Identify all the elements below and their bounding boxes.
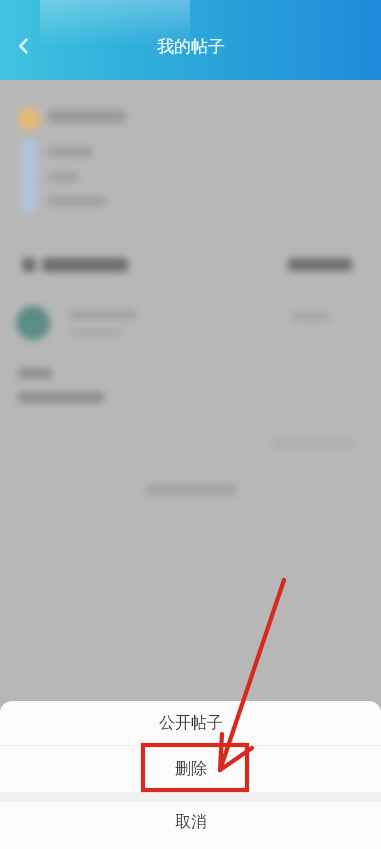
staticText: 取消 <box>175 812 207 832</box>
button[interactable]: 取消 <box>0 802 381 849</box>
staticText: 公开帖子 <box>159 713 223 733</box>
button[interactable]: Back <box>0 22 48 70</box>
staticText: 我的帖子 <box>157 36 225 57</box>
button[interactable]: 公开帖子 <box>0 701 381 745</box>
button[interactable]: 删除 <box>0 746 381 792</box>
staticText: 删除 <box>175 759 207 779</box>
